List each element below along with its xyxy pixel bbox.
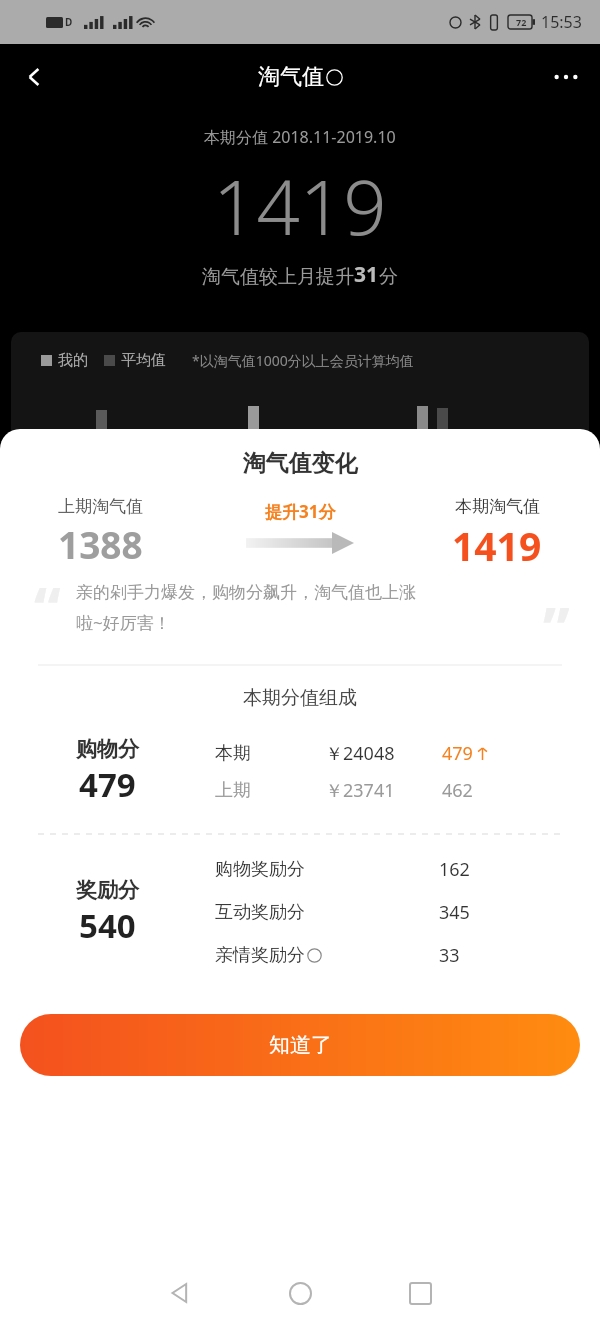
staticText: 345 <box>439 900 470 925</box>
staticText: 我的 <box>58 351 88 370</box>
button[interactable]: Back <box>145 1258 215 1328</box>
staticText: 淘气值变化 <box>0 449 600 478</box>
staticText: D <box>65 15 73 29</box>
staticText: *以淘气值1000分以上会员计算均值 <box>192 351 414 370</box>
staticText: “ <box>34 566 61 642</box>
staticText: 479 <box>442 741 473 766</box>
staticText: 淘气值 <box>258 63 324 91</box>
staticText: 提升31分 <box>265 500 336 523</box>
staticText: 72 <box>516 16 527 28</box>
staticText: 本期 <box>215 742 325 765</box>
staticText: 479 <box>79 762 136 807</box>
staticText: 本期分值 2018.11-2019.10 <box>204 126 396 148</box>
staticText: 互动奖励分 <box>215 901 305 924</box>
staticText: 1419 <box>213 154 387 258</box>
staticText: 上期 <box>215 779 325 802</box>
staticText: 知道了 <box>269 1032 332 1058</box>
button[interactable]: More options <box>538 49 594 105</box>
button[interactable]: Home <box>265 1258 335 1328</box>
staticText: 平均值 <box>121 351 166 370</box>
button[interactable]: Back <box>6 49 62 105</box>
staticText: 上期淘气值 <box>58 496 143 517</box>
staticText: 1388 <box>58 519 143 569</box>
staticText: ￥24048 <box>325 741 442 766</box>
staticText: 亲情奖励分 <box>215 944 305 967</box>
staticText: 1419 <box>452 519 542 572</box>
staticText: 15:53 <box>541 11 582 33</box>
staticText: 31 <box>354 260 379 289</box>
staticText: 分 <box>379 265 398 289</box>
staticText: 亲的剁手力爆发，购物分飙升，淘气值也上涨 啦~好厉害！ <box>76 582 516 634</box>
staticText: ” <box>543 586 570 662</box>
staticText: 淘气值较上月提升 <box>202 265 354 289</box>
button[interactable]: 知道了 <box>20 1014 580 1076</box>
staticText: 本期分值组成 <box>0 686 600 710</box>
staticText: 购物分 <box>76 736 139 762</box>
staticText: 540 <box>79 903 136 948</box>
staticText: ￥23741 <box>325 778 442 803</box>
staticText: 本期淘气值 <box>455 496 540 517</box>
staticText: 奖励分 <box>76 877 139 903</box>
staticText: 162 <box>439 857 470 882</box>
staticText: 33 <box>439 943 460 968</box>
staticText: 462 <box>442 778 473 803</box>
staticText: 购物奖励分 <box>215 858 305 881</box>
button[interactable]: Recents <box>385 1258 455 1328</box>
